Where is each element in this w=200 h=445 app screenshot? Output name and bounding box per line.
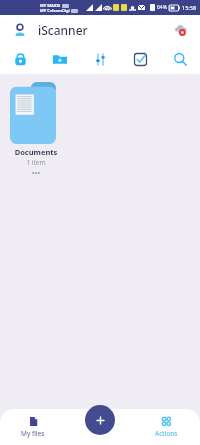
staticText: iScanner [38,22,88,38]
button[interactable]: New folder [40,44,80,74]
staticText: 64% [157,4,167,11]
button[interactable]: Profile [9,19,31,41]
button[interactable]: Select [120,44,160,74]
staticText: Documents [10,147,62,157]
staticText: MY MAXIS [40,3,61,8]
button[interactable]: Search [160,44,200,74]
button[interactable]: Lock [0,44,40,74]
button[interactable]: Add [85,405,115,435]
button[interactable]: Actions [133,409,200,445]
button[interactable] [10,82,60,144]
button[interactable]: My files [0,409,66,445]
staticText: MY CelcomDigi [40,8,70,13]
staticText: 1 item [10,158,62,167]
button[interactable]: Sort [80,44,120,74]
button[interactable]: Cloud sync error [170,19,192,41]
button[interactable]: More options [10,168,62,178]
staticText: Actions [155,429,178,438]
staticText: 15:58 [182,4,197,11]
staticText: My files [21,429,45,438]
